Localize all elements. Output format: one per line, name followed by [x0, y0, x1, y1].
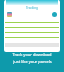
- staticText: Tracking: [4, 6, 60, 10]
- button[interactable]: Status: [52, 12, 57, 17]
- staticText: just like your parcels: [13, 59, 52, 64]
- button[interactable]: Profile: [7, 12, 12, 17]
- staticText: Track your download: [12, 52, 52, 57]
